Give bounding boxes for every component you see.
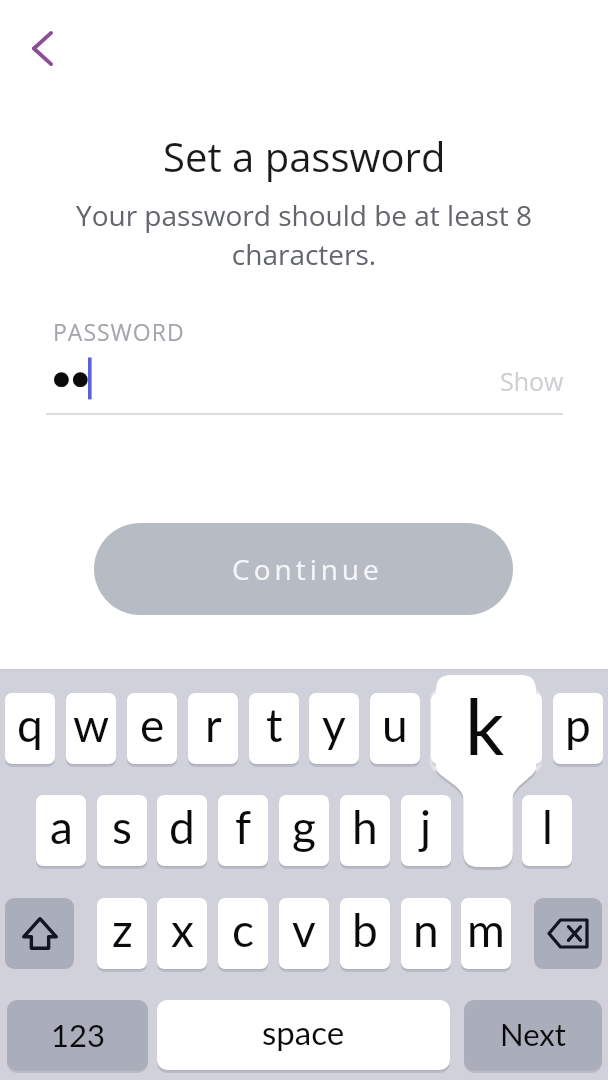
staticText: u [382,697,408,752]
button[interactable]: Next [464,1000,602,1070]
staticText: Next [500,1015,566,1052]
button[interactable]: j [401,795,451,866]
staticText: Your password should be at least 8 chara… [56,196,552,273]
button[interactable]: c [218,898,268,969]
staticText: w [73,697,110,752]
staticText: l [542,799,553,854]
staticText: h [352,799,378,854]
staticText: space [262,1012,345,1052]
staticText: a [50,799,73,854]
button[interactable]: Continue [94,523,513,615]
button[interactable]: Shift [5,898,74,969]
staticText: c [232,902,254,957]
staticText: q [17,697,43,752]
staticText: y [322,697,346,752]
staticText: k [465,679,505,771]
button[interactable]: y [309,693,359,764]
button[interactable]: f [218,795,268,866]
button[interactable]: u [370,693,420,764]
button[interactable]: Backspace [534,898,602,969]
button[interactable]: 123 [7,1000,148,1070]
staticText: g [292,799,316,854]
staticText: z [112,902,133,957]
button[interactable]: e [127,693,177,764]
button[interactable]: o [492,693,542,764]
staticText: e [140,697,165,752]
staticText: b [352,902,378,957]
button[interactable]: Back [13,19,71,77]
staticText: j [420,799,432,854]
button[interactable]: s [97,795,147,866]
button[interactable]: z [97,898,147,969]
button[interactable]: i [431,693,481,764]
button[interactable]: b [340,898,390,969]
button[interactable]: Show [500,364,564,398]
button[interactable]: w [66,693,116,764]
staticText: PASSWORD [53,316,185,347]
button[interactable]: l [522,795,572,866]
button[interactable]: g [279,795,329,866]
staticText: p [565,697,591,752]
staticText: Set a password [163,129,446,183]
button[interactable]: h [340,795,390,866]
button[interactable]: r [188,693,238,764]
button[interactable]: a [36,795,86,866]
staticText: v [292,902,316,957]
button[interactable]: n [401,898,451,969]
staticText: 123 [51,1016,105,1053]
staticText: r [205,697,222,752]
button[interactable]: p [553,693,603,764]
button[interactable]: space [157,1000,450,1070]
staticText: d [169,799,195,854]
button[interactable]: x [157,898,207,969]
button[interactable]: v [279,898,329,969]
staticText: Continue [232,550,383,588]
staticText: Show [500,364,564,398]
button[interactable]: d [157,795,207,866]
staticText: m [467,902,505,957]
button[interactable]: q [5,693,55,764]
button[interactable]: m [461,898,511,969]
staticText: s [112,799,132,854]
staticText: x [171,902,194,957]
staticText: n [413,902,439,957]
staticText: t [266,697,283,752]
button[interactable]: t [249,693,299,764]
staticText: f [235,799,252,854]
